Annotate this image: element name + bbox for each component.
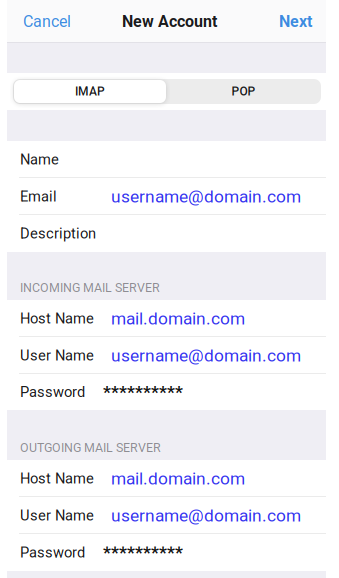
staticText: Password	[20, 383, 85, 401]
staticText: Email	[20, 188, 57, 205]
staticText: username@domain.com	[111, 345, 301, 366]
staticText: Next	[279, 12, 312, 31]
staticText: INCOMING MAIL SERVER	[20, 280, 160, 295]
button[interactable]: Host Name	[7, 300, 326, 337]
staticText: Cancel	[23, 12, 71, 31]
button[interactable]: POP	[166, 80, 321, 103]
staticText: username@domain.com	[111, 186, 301, 207]
button[interactable]: User Name	[7, 497, 326, 534]
staticText: Description	[20, 225, 96, 242]
button[interactable]: Description	[7, 215, 326, 252]
button[interactable]: User Name	[7, 337, 326, 374]
staticText: username@domain.com	[111, 505, 301, 526]
staticText: mail.domain.com	[111, 468, 245, 489]
button[interactable]: Cancel	[7, 0, 81, 43]
staticText: Host Name	[20, 310, 94, 327]
staticText: Name	[20, 151, 59, 168]
staticText: POP	[231, 84, 255, 99]
button[interactable]: Email	[7, 178, 326, 215]
staticText: User Name	[20, 347, 94, 364]
staticText: **********	[103, 542, 183, 563]
staticText: **********	[103, 382, 183, 402]
staticText: OUTGOING MAIL SERVER	[20, 440, 161, 455]
staticText: mail.domain.com	[111, 308, 245, 329]
button[interactable]: Next	[269, 0, 326, 43]
button[interactable]: Password	[7, 374, 326, 410]
button[interactable]: IMAP	[14, 80, 166, 103]
staticText: Password	[20, 544, 85, 561]
staticText: IMAP	[75, 84, 105, 99]
staticText: New Account	[122, 12, 217, 31]
staticText: User Name	[20, 507, 94, 524]
button[interactable]: Host Name	[7, 460, 326, 497]
staticText: Host Name	[20, 470, 94, 487]
button[interactable]: Password	[7, 534, 326, 571]
button[interactable]: Name	[7, 141, 326, 178]
